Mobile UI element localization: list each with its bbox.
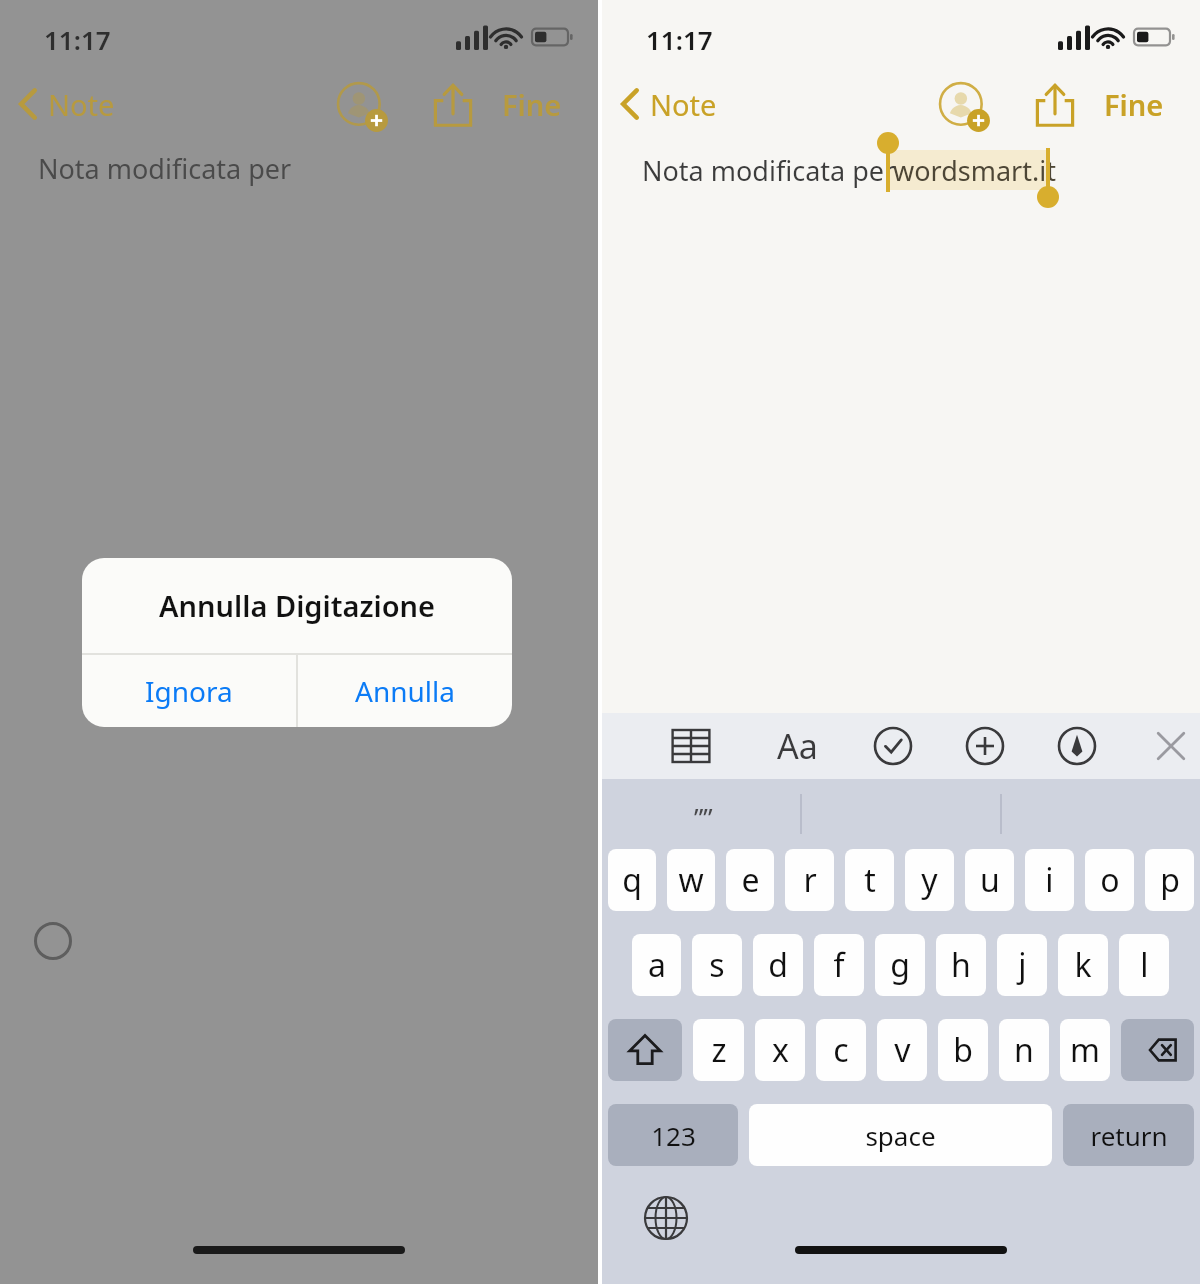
- button[interactable]: t: [845, 849, 894, 911]
- staticText: l: [1140, 943, 1149, 987]
- staticText: c: [833, 1028, 849, 1072]
- button[interactable]: r: [785, 849, 834, 911]
- button[interactable]: Markup: [1046, 715, 1108, 777]
- button[interactable]: Aa: [766, 715, 828, 777]
- button[interactable]: z: [693, 1019, 744, 1081]
- button[interactable]: v: [877, 1019, 927, 1081]
- button[interactable]: Close keyboard: [1142, 715, 1200, 777]
- button[interactable]: h: [936, 934, 986, 996]
- staticText: d: [768, 943, 788, 987]
- button[interactable]: e: [726, 849, 774, 911]
- button[interactable]: Table: [660, 715, 722, 777]
- button[interactable]: c: [816, 1019, 866, 1081]
- staticText: 11:17: [646, 22, 713, 57]
- button[interactable]: Fine: [1104, 78, 1164, 130]
- staticText: p: [1160, 858, 1180, 902]
- button[interactable]: q: [608, 849, 656, 911]
- button[interactable]: w: [667, 849, 715, 911]
- button[interactable]: j: [997, 934, 1047, 996]
- button[interactable]: Note: [16, 78, 115, 130]
- staticText: Aa: [777, 723, 818, 769]
- staticText: i: [1045, 858, 1054, 902]
- staticText: r: [803, 858, 817, 902]
- staticText: u: [980, 858, 1000, 902]
- button[interactable]: d: [753, 934, 803, 996]
- staticText: v: [894, 1028, 911, 1072]
- staticText: Ignora: [145, 672, 233, 710]
- button[interactable]: Shift: [608, 1019, 682, 1081]
- button[interactable]: Annulla: [298, 655, 512, 727]
- staticText: h: [951, 943, 971, 987]
- button[interactable]: n: [999, 1019, 1049, 1081]
- staticText: o: [1100, 858, 1120, 902]
- button[interactable]: u: [965, 849, 1014, 911]
- button[interactable]: 123: [608, 1104, 738, 1166]
- staticText: t: [864, 858, 876, 902]
- staticText: 11:17: [44, 22, 111, 57]
- button[interactable]: Switch keyboard: [638, 1190, 694, 1246]
- staticText: Note: [48, 85, 115, 124]
- button[interactable]: space: [749, 1104, 1052, 1166]
- button[interactable]: Checklist: [862, 715, 924, 777]
- staticText: Fine: [1104, 85, 1164, 124]
- staticText: s: [709, 943, 725, 987]
- button[interactable]: k: [1058, 934, 1108, 996]
- staticText: return: [1090, 1118, 1168, 1153]
- button[interactable]: y: [905, 849, 954, 911]
- button[interactable]: i: [1025, 849, 1074, 911]
- staticText: y: [921, 858, 938, 902]
- button[interactable]: a: [632, 934, 681, 996]
- staticText: b: [953, 1028, 973, 1072]
- staticText: Annulla Digitazione: [159, 586, 436, 625]
- staticText: Note: [650, 85, 717, 124]
- button[interactable]: x: [755, 1019, 805, 1081]
- button[interactable]: o: [1085, 849, 1134, 911]
- staticText: ””: [694, 799, 713, 834]
- button[interactable]: l: [1119, 934, 1169, 996]
- staticText: 123: [651, 1118, 696, 1153]
- button[interactable]: Ignora: [82, 655, 296, 727]
- staticText: g: [890, 943, 910, 987]
- staticText: Nota modificata per: [642, 152, 896, 189]
- staticText: m: [1070, 1028, 1100, 1072]
- staticText: wordsmart.it: [893, 152, 1056, 189]
- staticText: q: [622, 858, 642, 902]
- button[interactable]: p: [1145, 849, 1194, 911]
- button[interactable]: Add people: [934, 76, 996, 138]
- button[interactable]: s: [692, 934, 742, 996]
- staticText: w: [678, 858, 704, 902]
- button[interactable]: Share: [424, 76, 482, 134]
- staticText: x: [772, 1028, 789, 1072]
- button[interactable]: Note: [618, 78, 717, 130]
- staticText: a: [648, 943, 666, 987]
- staticText: f: [833, 943, 845, 987]
- button[interactable]: m: [1060, 1019, 1110, 1081]
- staticText: Fine: [502, 85, 562, 124]
- button[interactable]: Add people: [332, 76, 394, 138]
- staticText: z: [711, 1028, 727, 1072]
- staticText: n: [1014, 1028, 1034, 1072]
- staticText: space: [865, 1118, 936, 1153]
- button[interactable]: Add attachment: [954, 715, 1016, 777]
- staticText: Nota modificata per: [38, 150, 292, 187]
- button[interactable]: f: [814, 934, 864, 996]
- staticText: j: [1018, 943, 1027, 987]
- button[interactable]: Fine: [502, 78, 562, 130]
- staticText: e: [741, 858, 760, 902]
- button[interactable]: Share: [1026, 76, 1084, 134]
- button[interactable]: b: [938, 1019, 988, 1081]
- button[interactable]: return: [1063, 1104, 1194, 1166]
- staticText: k: [1074, 943, 1092, 987]
- button[interactable]: Backspace: [1121, 1019, 1194, 1081]
- staticText: Annulla: [355, 672, 455, 710]
- button[interactable]: g: [875, 934, 925, 996]
